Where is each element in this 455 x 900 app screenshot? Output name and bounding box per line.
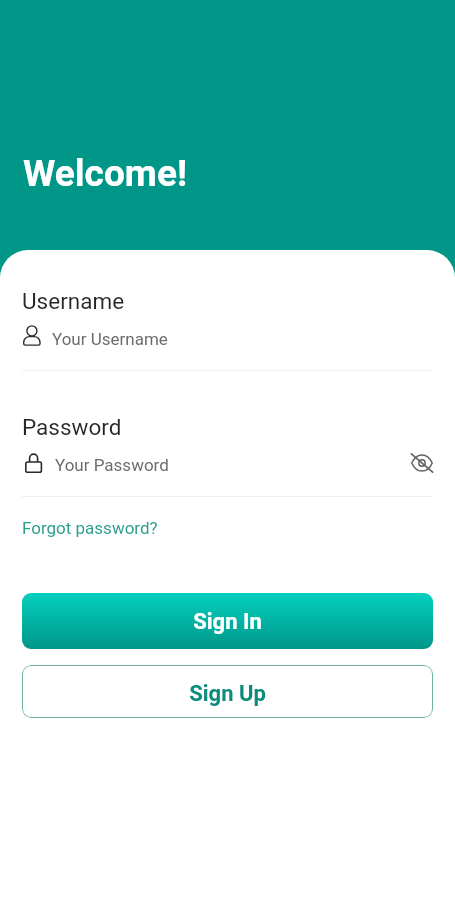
staticText: Username [22, 288, 125, 314]
staticText: Sign In [193, 609, 262, 635]
staticText: Your Username [52, 329, 168, 349]
staticText: Your Password [55, 455, 169, 475]
button[interactable]: Sign In [22, 593, 433, 649]
button[interactable]: Password input [22, 446, 433, 496]
button[interactable]: Forgot password? [22, 510, 158, 544]
staticText: Sign Up [189, 681, 266, 707]
staticText: Forgot password? [22, 518, 158, 538]
button[interactable]: Show password [407, 448, 437, 478]
staticText: Password [22, 414, 122, 440]
button[interactable]: Username input [22, 320, 433, 370]
button[interactable]: Sign Up [22, 665, 433, 718]
staticText: Welcome! [23, 152, 187, 195]
